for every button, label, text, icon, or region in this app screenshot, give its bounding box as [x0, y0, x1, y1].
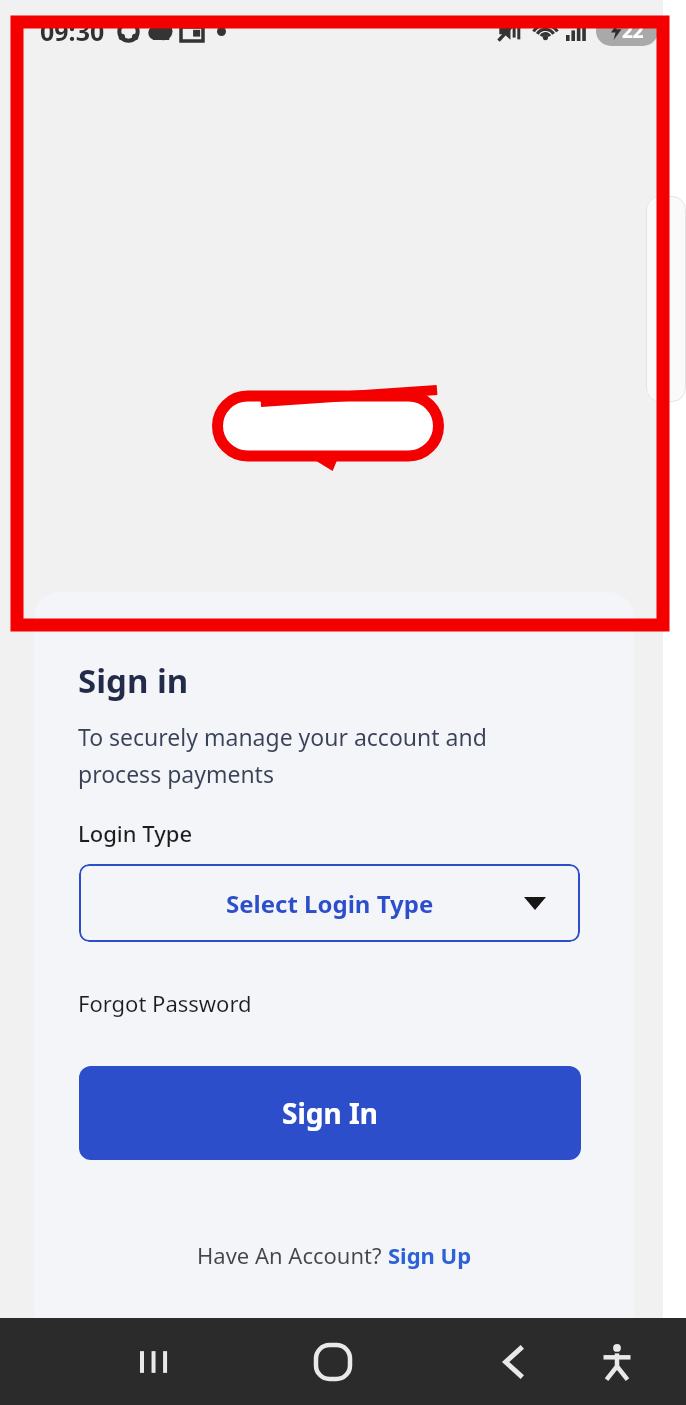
button[interactable]: Recents — [110, 1318, 198, 1405]
button[interactable]: Sign Up — [388, 1240, 472, 1270]
button[interactable]: Accessibility — [573, 1318, 661, 1405]
staticText: 09:30 — [40, 14, 105, 48]
staticText: Login Type — [78, 818, 193, 848]
staticText: Forgot Password — [78, 988, 252, 1018]
staticText: Sign Up — [388, 1240, 472, 1270]
button[interactable]: Forgot Password — [34, 986, 252, 1020]
button[interactable]: Back — [470, 1318, 558, 1405]
button[interactable]: Home — [289, 1318, 377, 1405]
button[interactable]: Select Login Type — [79, 864, 580, 942]
staticText: To securely manage your account and proc… — [78, 721, 487, 790]
staticText: Sign in — [78, 658, 189, 703]
staticText: Sign In — [282, 1094, 379, 1132]
button[interactable]: Sign In — [79, 1066, 581, 1160]
staticText: 22 — [622, 18, 644, 44]
staticText: Select Login Type — [226, 887, 434, 920]
staticText: Have An Account? — [197, 1240, 388, 1270]
